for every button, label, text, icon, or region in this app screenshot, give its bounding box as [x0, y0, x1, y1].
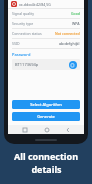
- staticText: abcdefghijkl: [59, 41, 80, 46]
- button[interactable]: Copy password: [69, 61, 77, 69]
- button[interactable]: Generate: [12, 112, 80, 121]
- staticText: details: [31, 163, 62, 175]
- button[interactable]: Connection status: [12, 31, 80, 36]
- button[interactable]: SSID: [12, 41, 80, 46]
- staticText: Not connected: [55, 31, 80, 36]
- staticText: BT1173694p: [15, 62, 39, 67]
- staticText: Select Algorithm: [30, 102, 62, 107]
- button[interactable]: BT1173694p: [12, 59, 80, 70]
- button[interactable]: Select Algorithm: [12, 100, 80, 109]
- staticText: WPA: [72, 21, 80, 26]
- button[interactable]: Security type: [12, 21, 80, 26]
- button[interactable]: Network icon: [11, 1, 81, 7]
- staticText: Generate: [37, 114, 55, 119]
- button[interactable]: Recents: [20, 125, 29, 134]
- staticText: xx-ddxx4t:42/84,5G: [19, 2, 51, 7]
- staticText: SSID: [12, 41, 20, 46]
- staticText: Signal quality: [12, 11, 35, 16]
- staticText: All connection: [14, 150, 78, 162]
- other: Network icon: [11, 1, 17, 7]
- staticText: Security type: [12, 21, 34, 26]
- button[interactable]: Signal quality: [12, 11, 80, 16]
- staticText: Password: [12, 52, 31, 57]
- staticText: Connection status: [12, 31, 42, 36]
- staticText: Good: [71, 11, 80, 16]
- button[interactable]: Home: [42, 125, 51, 134]
- button[interactable]: Back: [63, 125, 72, 134]
